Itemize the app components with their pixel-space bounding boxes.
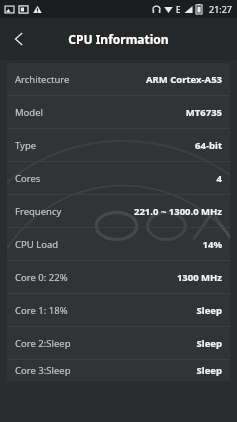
staticText: Type [15, 139, 37, 152]
staticText: 21:27 [209, 3, 233, 15]
staticText: Frequency [15, 205, 62, 218]
staticText: Core 3:Sleep [15, 364, 71, 377]
staticText: CPU Load [15, 238, 59, 251]
staticText: CPU Information [68, 31, 169, 47]
staticText: Sleep [196, 337, 222, 350]
staticText: Core 1: 18% [15, 304, 68, 317]
staticText: 14% [202, 238, 222, 251]
button[interactable]: Back [0, 20, 38, 58]
staticText: Sleep [196, 364, 222, 377]
staticText: Cores [15, 172, 41, 185]
staticText: 1300 MHz [176, 271, 222, 284]
button[interactable]: Cores [7, 162, 230, 194]
button[interactable]: Architecture [7, 63, 230, 95]
staticText: Core 2:Sleep [15, 337, 71, 350]
button[interactable]: Type [7, 129, 230, 161]
staticText: 221.0 ~ 1300.0 MHz [134, 205, 222, 218]
staticText: Architecture [15, 73, 70, 86]
button[interactable]: Core 1: 18% [7, 294, 230, 326]
staticText: MT6735 [185, 106, 222, 119]
button[interactable]: CPU Load [7, 228, 230, 260]
button[interactable]: Core 3:Sleep [7, 360, 230, 381]
button[interactable]: Model [7, 96, 230, 128]
button[interactable]: Core 0: 22% [7, 261, 230, 293]
staticText: 4 [216, 172, 222, 185]
staticText: ARM Cortex-A53 [145, 73, 222, 86]
button[interactable]: Core 2:Sleep [7, 327, 230, 359]
staticText: Model [15, 106, 44, 119]
staticText: 64-bit [195, 139, 222, 152]
staticText: E [176, 4, 181, 15]
button[interactable]: Frequency [7, 195, 230, 227]
staticText: Core 0: 22% [15, 271, 68, 284]
staticText: Sleep [196, 304, 222, 317]
